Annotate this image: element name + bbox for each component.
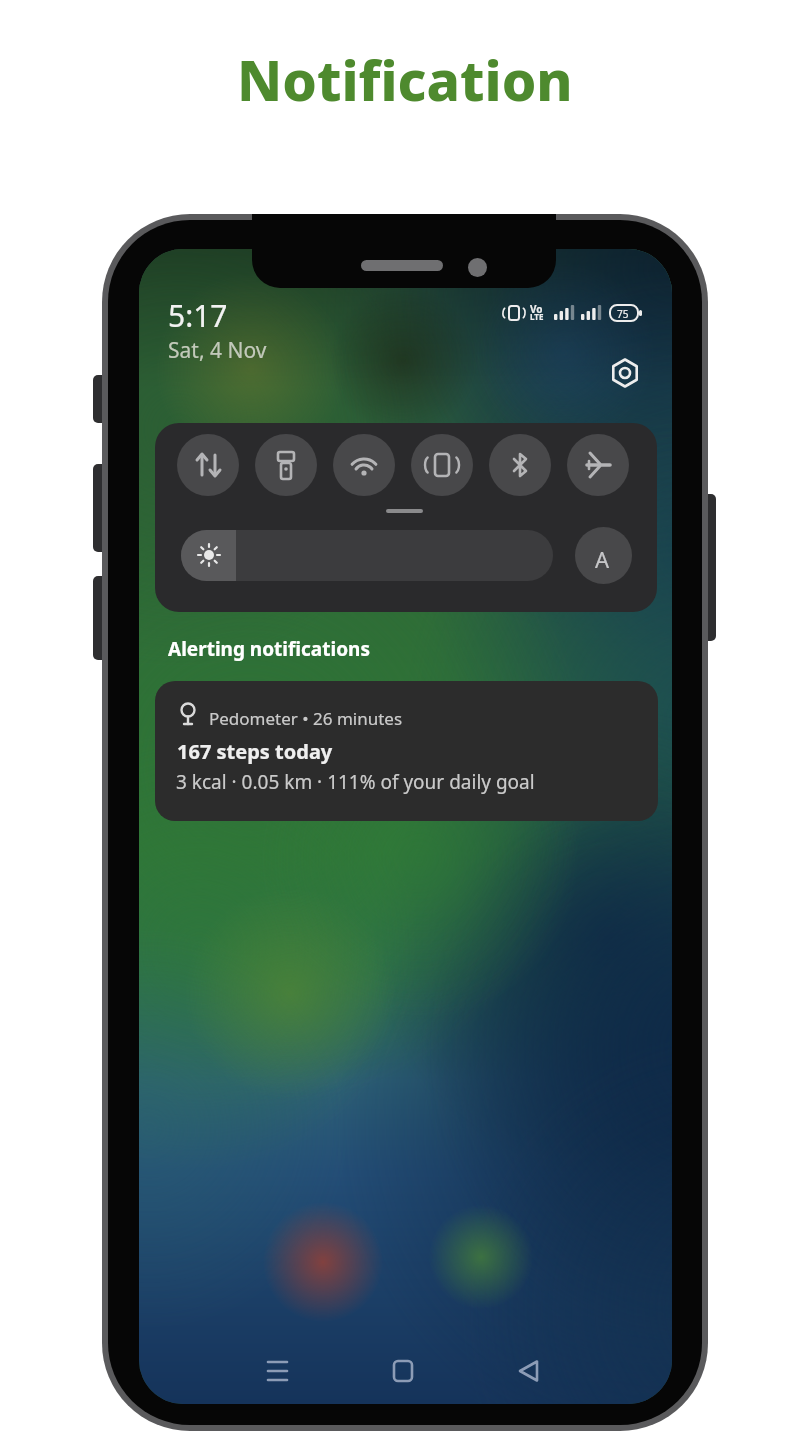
staticText: Sat, 4 Nov [168,336,267,365]
staticText: Notification [237,42,573,117]
staticText: Vo [530,302,543,316]
staticText: Alerting notifications [168,636,370,662]
staticText: A [595,544,610,574]
staticText: 75 [617,307,629,321]
staticText: Pedometer • 26 minutes [209,707,403,730]
staticText: 3 kcal · 0.05 km · 111% of your daily go… [176,769,535,795]
staticText: LTE [530,311,544,322]
staticText: 5:17 [168,295,228,336]
staticText: 167 steps today [177,738,333,765]
